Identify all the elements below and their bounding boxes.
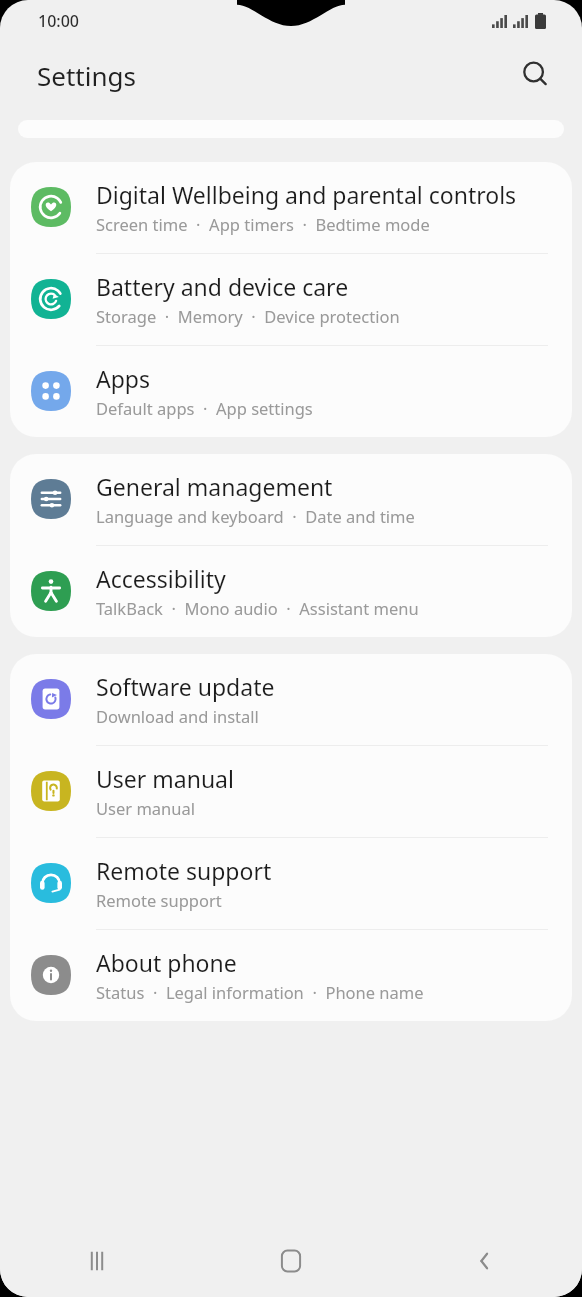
staticText: Language and keyboard · Date and time bbox=[96, 505, 415, 527]
staticText: About phone bbox=[96, 947, 237, 978]
staticText: TalkBack · Mono audio · Assistant menu bbox=[96, 597, 419, 619]
button[interactable]: Accessibility bbox=[10, 546, 572, 637]
staticText: User manual bbox=[96, 797, 195, 819]
staticText: Download and install bbox=[96, 705, 259, 727]
button[interactable]: Search bbox=[512, 51, 560, 99]
button[interactable]: Remote support bbox=[10, 838, 572, 929]
button[interactable]: Recents bbox=[0, 1225, 194, 1297]
staticText: Battery and device care bbox=[96, 271, 349, 302]
button[interactable]: About phone bbox=[10, 930, 572, 1021]
staticText: Default apps · App settings bbox=[96, 397, 313, 419]
button[interactable]: Apps bbox=[10, 346, 572, 437]
staticText: Software update bbox=[96, 671, 275, 702]
staticText: Storage · Memory · Device protection bbox=[96, 305, 400, 327]
button[interactable]: Software update bbox=[10, 654, 572, 745]
staticText: Settings bbox=[37, 58, 136, 93]
staticText: Remote support bbox=[96, 855, 272, 886]
staticText: General management bbox=[96, 471, 333, 502]
staticText: Remote support bbox=[96, 889, 222, 911]
button[interactable]: User manual bbox=[10, 746, 572, 837]
staticText: Digital Wellbeing and parental controls bbox=[96, 179, 517, 210]
staticText: Screen time · App timers · Bedtime mode bbox=[96, 213, 430, 235]
staticText: User manual bbox=[96, 763, 234, 794]
button[interactable]: General management bbox=[10, 454, 572, 545]
button[interactable]: Back bbox=[388, 1225, 582, 1297]
staticText: Accessibility bbox=[96, 563, 226, 594]
staticText: 10:00 bbox=[38, 10, 79, 32]
button[interactable]: Home bbox=[194, 1225, 388, 1297]
button[interactable]: Battery and device care bbox=[10, 254, 572, 345]
staticText: Apps bbox=[96, 363, 151, 394]
button[interactable]: Digital Wellbeing and parental controls bbox=[10, 162, 572, 253]
staticText: Status · Legal information · Phone name bbox=[96, 981, 424, 1003]
